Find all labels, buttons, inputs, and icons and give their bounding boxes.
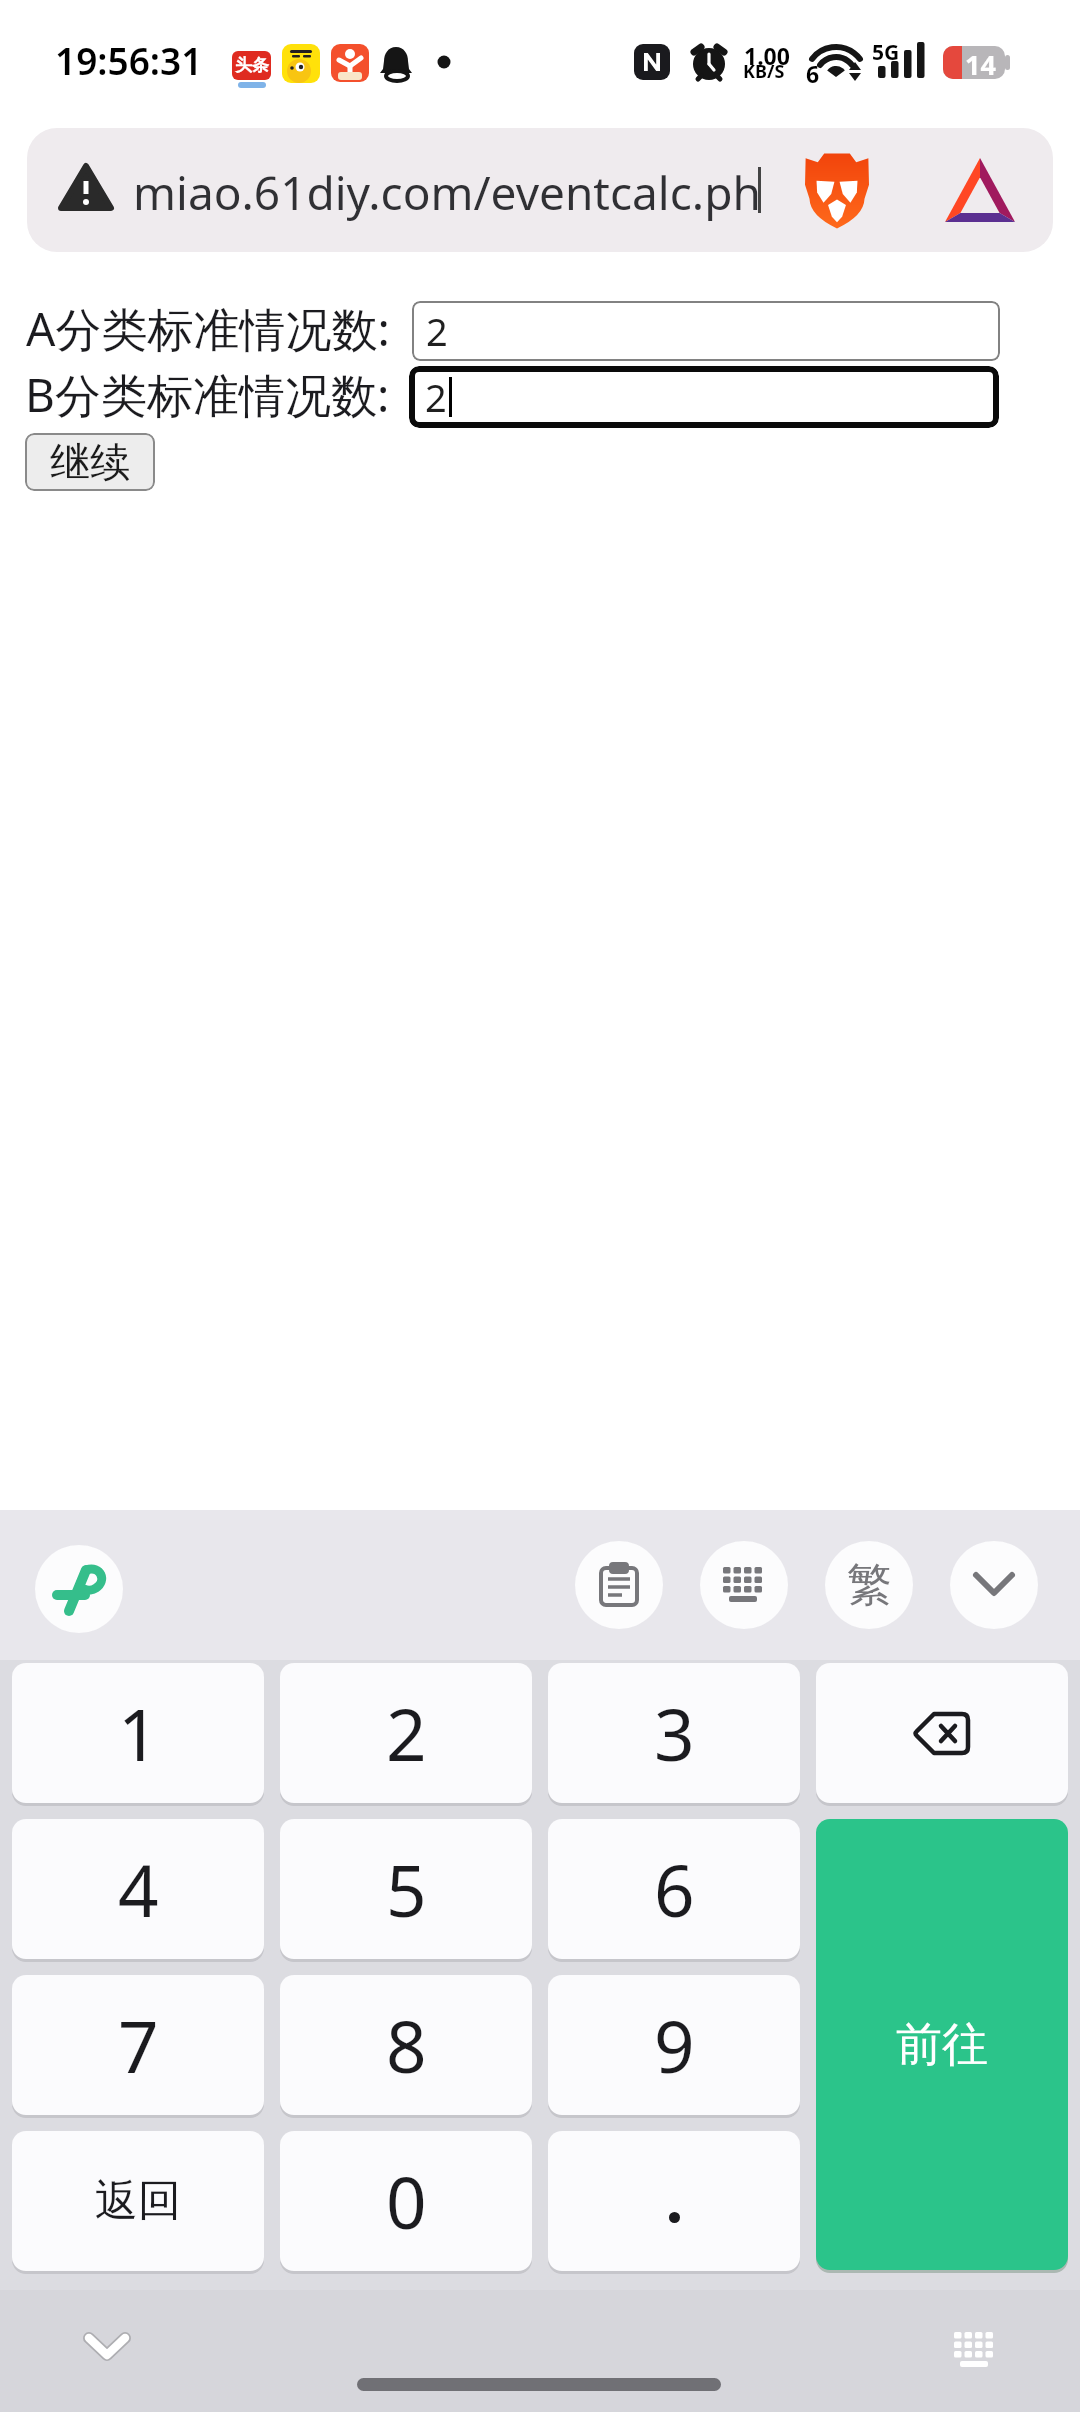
staticText: 6 [806, 58, 820, 89]
button[interactable] [700, 1541, 788, 1629]
button[interactable]: 6 [548, 1819, 800, 1959]
button[interactable]: 2 [280, 1663, 532, 1803]
staticText: A分类标准情况数: [26, 297, 390, 360]
staticText: 5G [872, 38, 900, 67]
staticText: 繁 [847, 1557, 892, 1614]
button[interactable]: 3 [548, 1663, 800, 1803]
staticText: 2 [426, 305, 448, 357]
staticText: 7 [118, 1997, 159, 2094]
staticText: 9 [654, 1997, 695, 2094]
button[interactable]: 0 [280, 2131, 532, 2271]
staticText: B分类标准情况数: [25, 363, 390, 426]
button[interactable] [945, 2328, 1005, 2372]
button[interactable]: 1 [12, 1663, 264, 1803]
staticText: 19:56:31 [55, 35, 203, 85]
button[interactable]: 继续 [25, 433, 155, 491]
button[interactable]: 繁 [825, 1541, 913, 1629]
staticText: 返回 [95, 2174, 181, 2228]
staticText: 3 [654, 1685, 695, 1782]
staticText: 5 [386, 1841, 427, 1938]
button[interactable]: 4 [12, 1819, 264, 1959]
staticText: 继续 [50, 437, 130, 487]
button[interactable]: miao.61diy.com/eventcalc.ph [27, 128, 1053, 252]
button[interactable]: 5 [280, 1819, 532, 1959]
button[interactable]: 9 [548, 1975, 800, 2115]
button[interactable] [950, 1541, 1038, 1629]
staticText: miao.61diy.com/eventcalc.ph [133, 161, 761, 224]
staticText: 4 [118, 1841, 159, 1938]
staticText: 2 [386, 1685, 427, 1782]
staticText: 1.00 [744, 40, 790, 71]
button[interactable]: 8 [280, 1975, 532, 2115]
button[interactable]: 返回 [12, 2131, 264, 2271]
button[interactable]: 7 [12, 1975, 264, 2115]
staticText: 1 [118, 1685, 159, 1782]
button[interactable] [575, 1541, 663, 1629]
button[interactable] [548, 2131, 800, 2271]
staticText: 2 [425, 371, 447, 423]
staticText: 8 [386, 1997, 427, 2094]
staticText: KB/S [743, 59, 785, 84]
button[interactable] [35, 1545, 123, 1633]
button[interactable] [816, 1663, 1068, 1803]
button[interactable]: 2 [412, 301, 1000, 361]
staticText: 头条 [235, 55, 269, 76]
button[interactable]: 前往 [816, 1819, 1068, 2270]
staticText: 前往 [896, 2016, 988, 2074]
button[interactable]: 2 [409, 366, 999, 428]
staticText: 0 [386, 2153, 427, 2250]
staticText: 14 [965, 46, 996, 79]
staticText: 6 [654, 1841, 695, 1938]
